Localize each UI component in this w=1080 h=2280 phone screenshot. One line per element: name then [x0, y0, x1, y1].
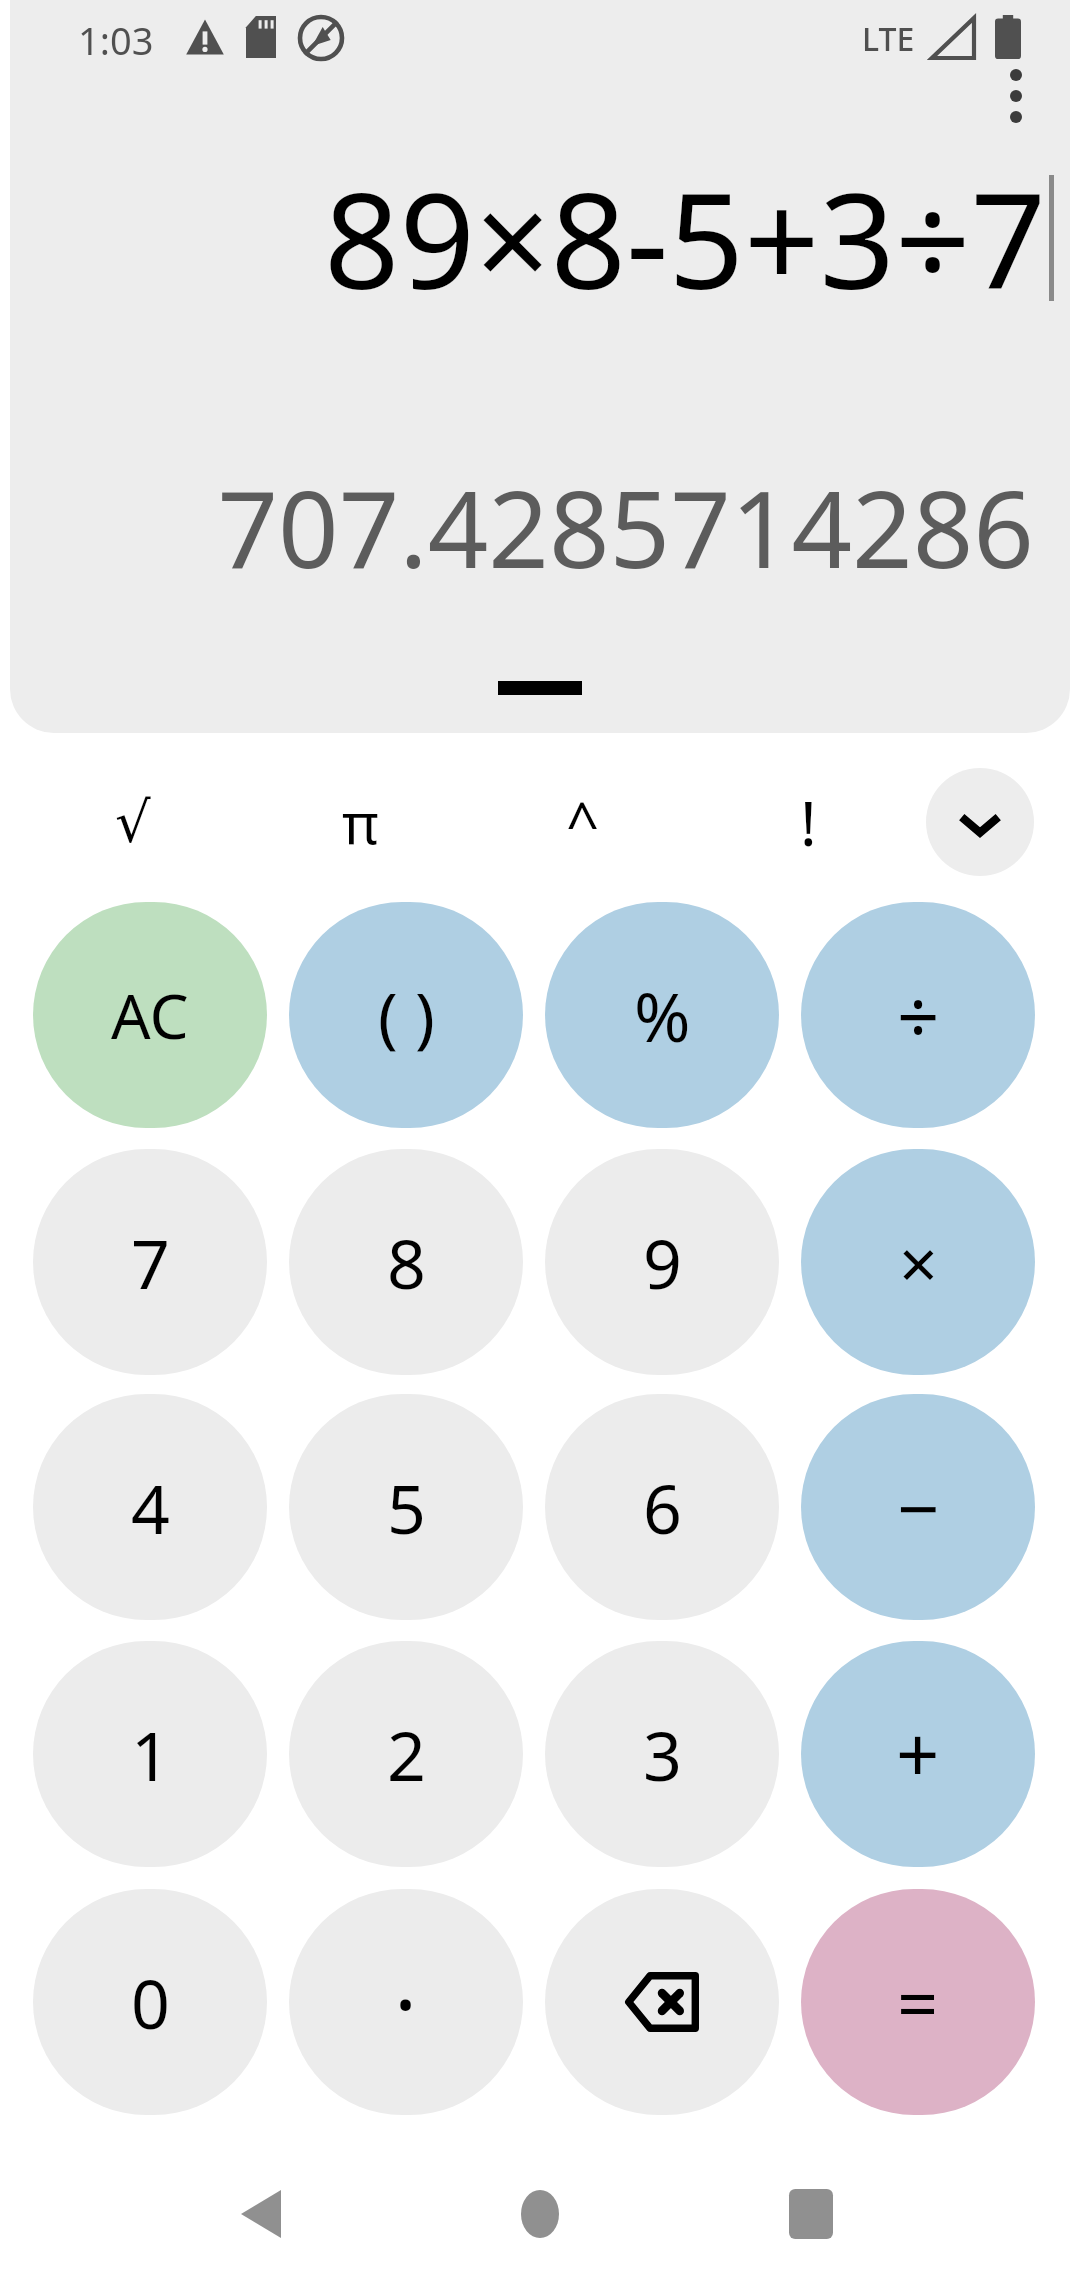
staticText: + — [896, 1702, 940, 1806]
button[interactable]: Back — [186, 2164, 336, 2264]
staticText: 4 — [131, 1461, 170, 1554]
staticText: % — [634, 969, 691, 1062]
staticText: 6 — [643, 1461, 682, 1554]
button[interactable]: 5 — [289, 1394, 523, 1620]
staticText: √ — [115, 790, 151, 855]
staticText: = — [897, 1953, 939, 2051]
button[interactable]: 4 — [33, 1394, 267, 1620]
staticText: 0 — [131, 1956, 170, 2049]
button[interactable]: · — [289, 1889, 523, 2115]
staticText: 1:03 — [78, 14, 154, 66]
button[interactable]: 9 — [545, 1149, 779, 1375]
staticText: × — [899, 1216, 938, 1309]
staticText: ^ — [566, 783, 600, 862]
button[interactable]: = — [801, 1889, 1035, 2115]
button[interactable]: + — [801, 1641, 1035, 1867]
button[interactable]: 2 — [289, 1641, 523, 1867]
button[interactable]: ÷ — [801, 902, 1035, 1128]
button[interactable]: ^ — [523, 762, 643, 882]
button[interactable]: AC — [33, 902, 267, 1128]
staticText: 5 — [387, 1461, 426, 1554]
staticText: 8 — [387, 1216, 426, 1309]
button[interactable]: 3 — [545, 1641, 779, 1867]
staticText: − — [897, 1457, 940, 1558]
staticText: 2 — [387, 1708, 426, 1801]
staticText: 707.4285714286 — [217, 455, 1034, 599]
staticText: 7 — [131, 1216, 170, 1309]
button[interactable]: Show more functions — [926, 768, 1034, 876]
button[interactable]: 6 — [545, 1394, 779, 1620]
staticText: LTE — [862, 17, 915, 61]
button[interactable]: √ — [73, 762, 193, 882]
button[interactable]: ( ) — [289, 902, 523, 1128]
staticText: ÷ — [897, 965, 940, 1066]
button[interactable]: Backspace — [545, 1889, 779, 2115]
staticText: 1 — [131, 1708, 170, 1801]
button[interactable]: 7 — [33, 1149, 267, 1375]
staticText: ( ) — [378, 970, 435, 1060]
staticText: 89×8-5+3÷7 — [323, 148, 1046, 328]
staticText: 3 — [643, 1708, 682, 1801]
button[interactable]: ! — [748, 762, 868, 882]
button[interactable]: Recent apps — [736, 2164, 886, 2264]
staticText: 9 — [643, 1216, 682, 1309]
button[interactable]: 8 — [289, 1149, 523, 1375]
button[interactable]: 1 — [33, 1641, 267, 1867]
button[interactable]: − — [801, 1394, 1035, 1620]
staticText: π — [342, 784, 379, 860]
staticText: · — [394, 1944, 418, 2061]
button[interactable]: Home — [465, 2164, 615, 2264]
staticText: AC — [111, 973, 189, 1057]
button[interactable]: 0 — [33, 1889, 267, 2115]
staticText: ! — [800, 780, 817, 864]
button[interactable]: π — [300, 762, 420, 882]
button[interactable]: More options — [968, 48, 1064, 144]
button[interactable]: × — [801, 1149, 1035, 1375]
button[interactable]: % — [545, 902, 779, 1128]
